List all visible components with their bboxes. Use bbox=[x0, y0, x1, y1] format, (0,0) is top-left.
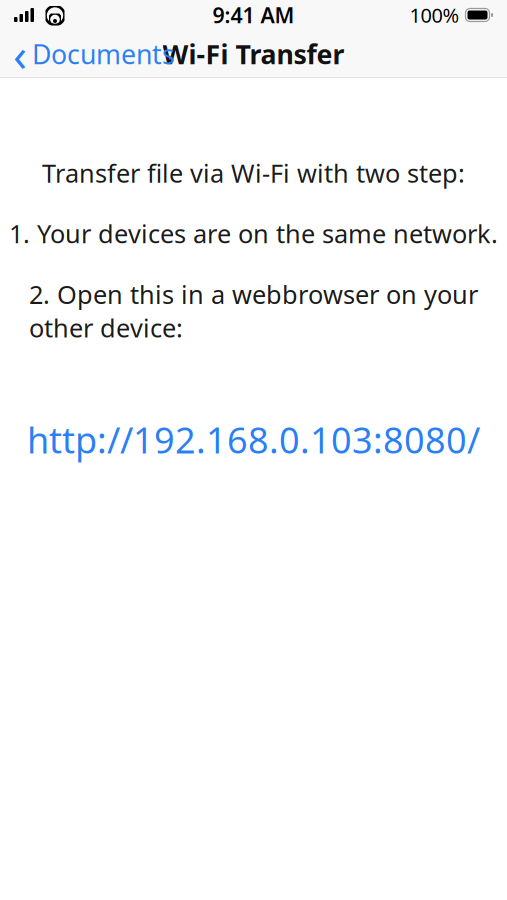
button[interactable]: http://192.168.0.103:8080/ bbox=[15, 411, 492, 468]
staticText: 2. Open this in a webbrowser on your oth… bbox=[29, 277, 478, 345]
staticText: 1. Your devices are on the same network. bbox=[9, 217, 498, 250]
staticText: Documents bbox=[32, 36, 175, 72]
staticText: ‹ bbox=[13, 24, 27, 84]
staticText: 100% bbox=[409, 2, 459, 28]
staticText: Wi-Fi Transfer bbox=[162, 36, 344, 72]
staticText: http://192.168.0.103:8080/ bbox=[27, 416, 480, 463]
button[interactable]: ‹ bbox=[0, 30, 185, 78]
staticText: Transfer file via Wi-Fi with two step: bbox=[42, 156, 465, 190]
staticText: 9:41 AM bbox=[212, 1, 294, 29]
